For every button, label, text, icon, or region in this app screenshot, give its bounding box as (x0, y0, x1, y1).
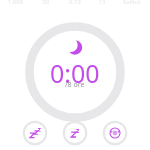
button[interactable]: Sleep stages (24, 122, 47, 145)
button[interactable]: Naps (64, 122, 87, 145)
button[interactable]: Sleep insights (104, 122, 127, 145)
button[interactable]: Sleep progress, 0 hours 0 minutes of 8 h… (23, 20, 127, 124)
